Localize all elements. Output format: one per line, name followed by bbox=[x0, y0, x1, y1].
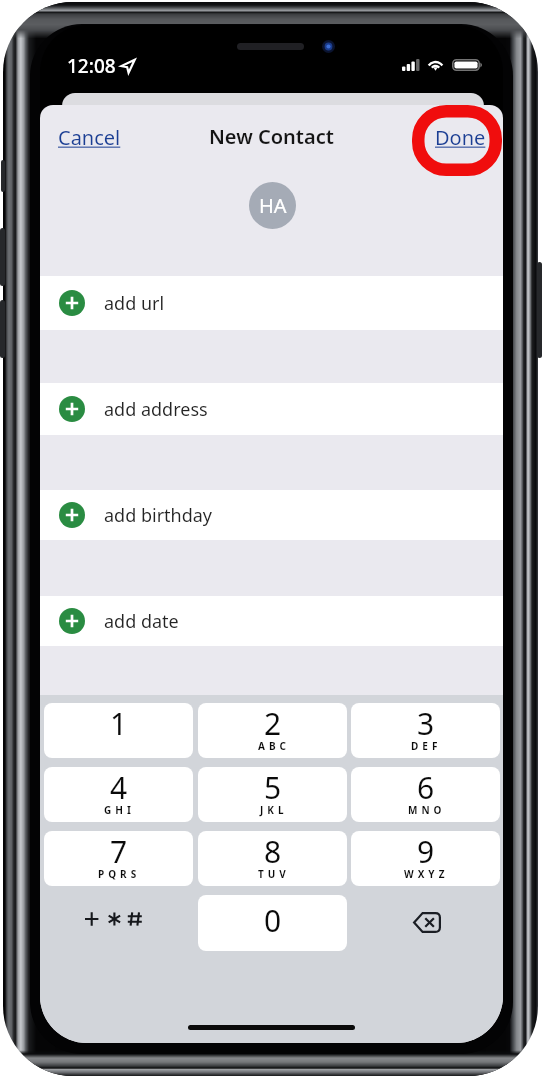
staticText: 4 bbox=[110, 767, 128, 808]
button[interactable]: add url bbox=[40, 276, 503, 330]
staticText: add url bbox=[104, 291, 165, 316]
staticText: MNO bbox=[408, 803, 446, 817]
staticText: WXYZ bbox=[404, 867, 449, 881]
staticText: 5 bbox=[264, 767, 282, 808]
staticText: 9 bbox=[417, 831, 435, 872]
button[interactable]: Cancel bbox=[52, 118, 127, 157]
staticText: DEF bbox=[411, 739, 442, 753]
staticText: add date bbox=[104, 609, 179, 634]
staticText: add address bbox=[104, 397, 208, 422]
staticText: 7 bbox=[110, 831, 128, 872]
staticText: 1 bbox=[110, 703, 128, 744]
staticText: 8 bbox=[264, 831, 282, 872]
staticText: 2 bbox=[264, 703, 282, 744]
button[interactable]: 2 bbox=[198, 703, 347, 758]
staticText: 3 bbox=[417, 703, 435, 744]
staticText: GHI bbox=[104, 803, 135, 817]
button[interactable]: add date bbox=[40, 596, 503, 646]
button[interactable]: 5 bbox=[198, 767, 347, 822]
button[interactable]: 4 bbox=[44, 767, 193, 822]
staticText: 6 bbox=[417, 767, 435, 808]
button[interactable]: 8 bbox=[198, 831, 347, 886]
button[interactable]: 6 bbox=[351, 767, 500, 822]
staticText: HA bbox=[259, 192, 287, 219]
button[interactable]: add birthday bbox=[40, 490, 503, 540]
staticText: Cancel bbox=[58, 124, 121, 151]
button[interactable]: 1 bbox=[44, 703, 193, 758]
button[interactable]: 0 bbox=[198, 895, 347, 951]
button[interactable]: Delete bbox=[352, 894, 501, 950]
button[interactable]: 9 bbox=[351, 831, 500, 886]
staticText: Done bbox=[435, 124, 486, 151]
staticText: ABC bbox=[258, 739, 290, 753]
staticText: JKL bbox=[260, 803, 288, 817]
staticText: PQRS bbox=[98, 867, 141, 881]
staticText: TUV bbox=[258, 867, 290, 881]
button[interactable]: Done bbox=[429, 118, 492, 157]
button[interactable]: 3 bbox=[351, 703, 500, 758]
button[interactable]: Symbols bbox=[40, 891, 188, 947]
button[interactable]: HA bbox=[249, 182, 296, 229]
staticText: 12:08 bbox=[67, 53, 116, 79]
staticText: add birthday bbox=[104, 503, 213, 528]
staticText: 0 bbox=[264, 900, 282, 941]
button[interactable]: 7 bbox=[44, 831, 193, 886]
staticText: New Contact bbox=[209, 123, 334, 150]
button[interactable]: add address bbox=[40, 383, 503, 435]
